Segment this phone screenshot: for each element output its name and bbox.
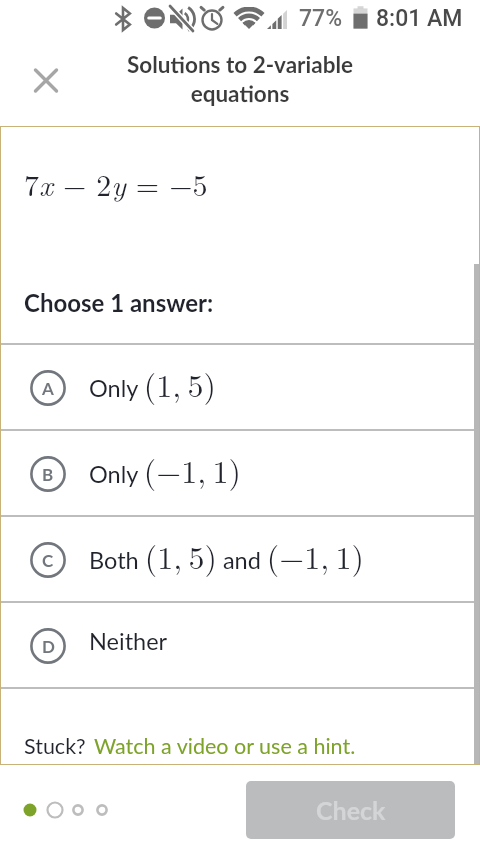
button[interactable]: Watch a video or use a hint. <box>94 733 356 759</box>
staticText: Watch a video or use a hint. <box>94 733 356 759</box>
button[interactable]: Close <box>22 57 70 105</box>
staticText: Neither <box>89 627 168 655</box>
staticText: Stuck? <box>24 733 86 759</box>
staticText: 8:01 AM <box>376 5 463 32</box>
staticText: B <box>42 464 54 484</box>
staticText: 77% <box>299 5 343 32</box>
staticText: Both (1, 5) and (−1, 1) <box>89 533 364 578</box>
staticText: A <box>42 378 54 398</box>
staticText: Choose 1 answer: <box>24 288 214 317</box>
staticText: Only (1, 5) <box>89 361 216 406</box>
button[interactable]: D <box>0 603 480 687</box>
button[interactable]: A <box>0 345 480 429</box>
button[interactable]: C <box>0 517 480 601</box>
button[interactable]: Check <box>246 781 455 839</box>
button[interactable]: B <box>0 431 480 515</box>
staticText: Solutions to 2-variable equations <box>60 51 420 107</box>
staticText: C <box>42 550 54 570</box>
staticText: Check <box>316 795 386 825</box>
staticText: Only (−1, 1) <box>89 447 241 492</box>
staticText: D <box>42 636 55 656</box>
staticText: 7x − 2y = −5 <box>24 162 208 205</box>
